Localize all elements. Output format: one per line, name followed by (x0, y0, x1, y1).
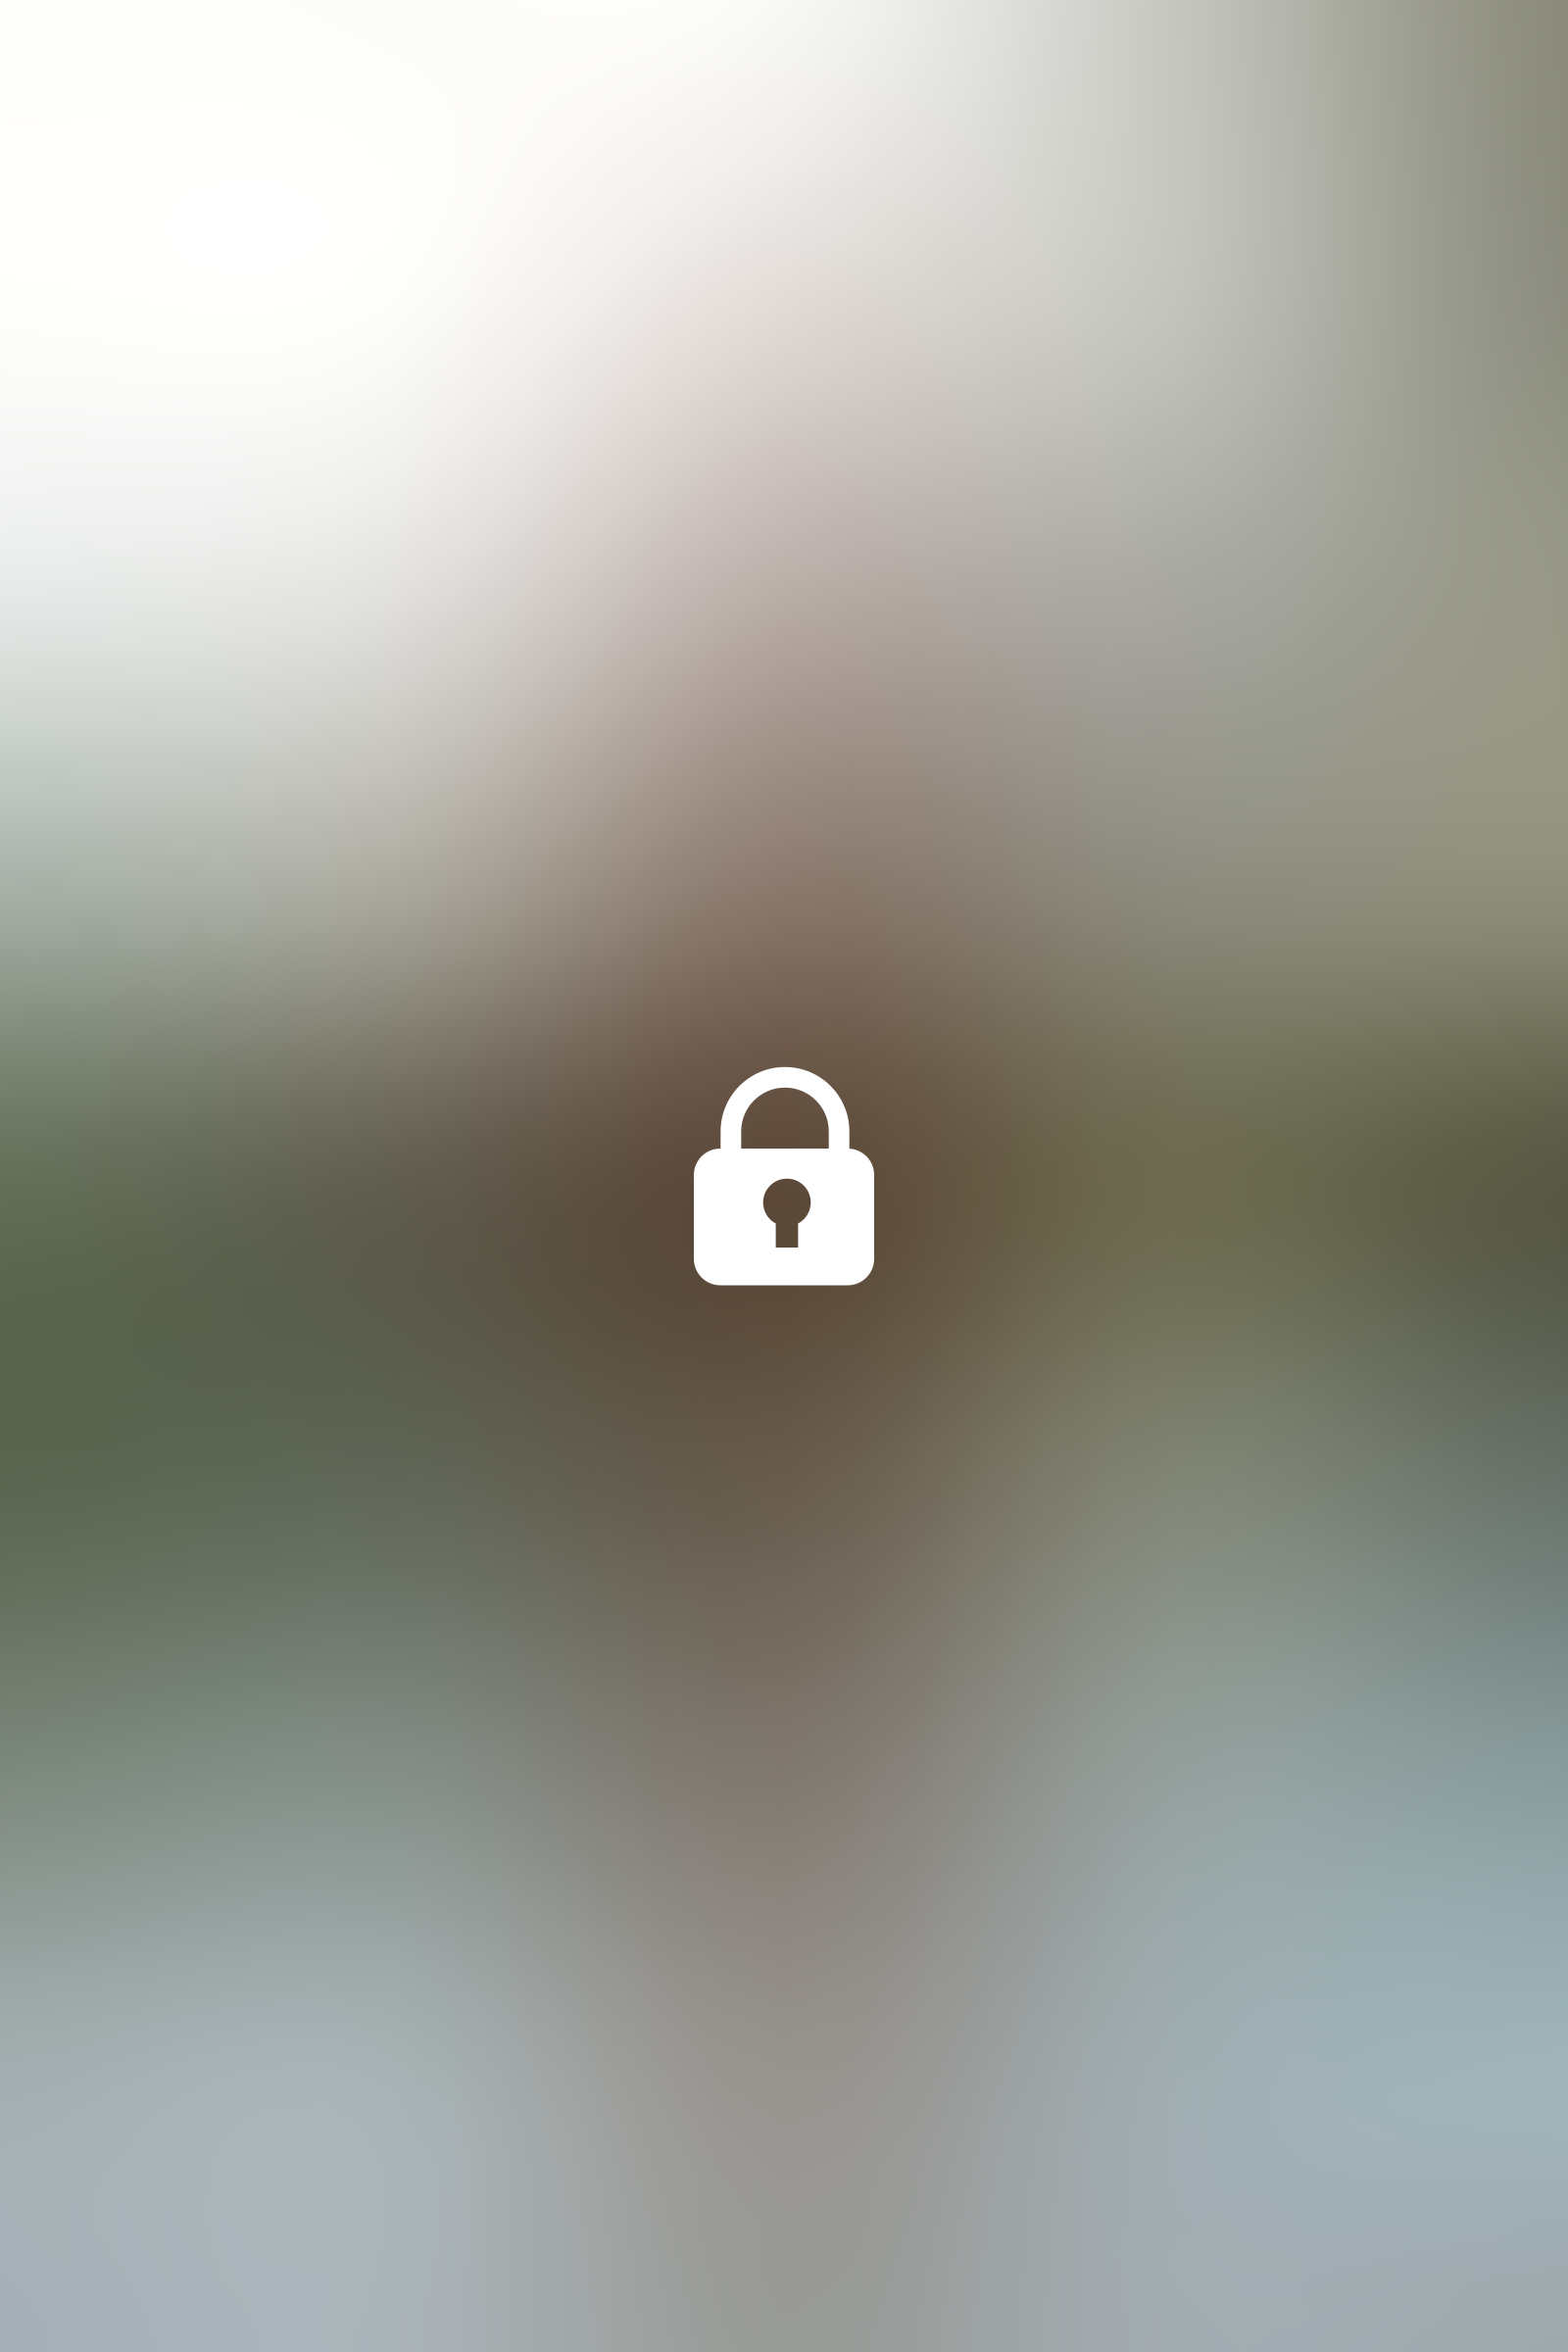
button[interactable]: Unlock (0, 0, 1568, 2352)
